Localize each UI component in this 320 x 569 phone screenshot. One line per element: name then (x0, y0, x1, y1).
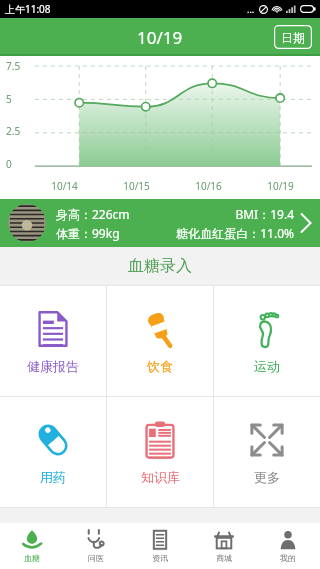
button[interactable]: 更多 (214, 397, 320, 507)
staticText: 身高：226cm (56, 206, 175, 222)
button[interactable]: 问医 (64, 523, 128, 569)
staticText: 健康报告 (27, 358, 79, 374)
staticText: 知识库 (141, 469, 180, 485)
button[interactable]: 身高：226cm (0, 199, 320, 247)
staticText: 日期 (281, 30, 305, 45)
staticText: 上午11:08 (5, 2, 51, 16)
staticText: 我的 (280, 553, 296, 563)
staticText: 10/15 (123, 179, 150, 193)
staticText: 10/19 (267, 179, 294, 193)
staticText: 7.5 (6, 59, 21, 73)
staticText: 商城 (216, 553, 232, 563)
staticText: 问医 (88, 553, 104, 563)
staticText: 血糖 (24, 553, 40, 563)
staticText: BMI：19.4 (175, 206, 294, 222)
staticText: 10/14 (51, 179, 78, 193)
staticText: 血糖录入 (128, 256, 192, 276)
staticText: 饮食 (147, 358, 173, 374)
staticText: ... (247, 3, 255, 15)
button[interactable]: 运动 (214, 286, 320, 396)
button[interactable]: 用药 (0, 397, 106, 507)
staticText: 10/19 (137, 26, 183, 49)
button[interactable]: 知识库 (107, 397, 213, 507)
staticText: 运动 (254, 358, 280, 374)
staticText: 用药 (40, 469, 66, 485)
staticText: 0 (6, 157, 12, 171)
button[interactable]: 血糖 (0, 523, 64, 569)
button[interactable]: 资讯 (128, 523, 192, 569)
other: Details (300, 212, 312, 234)
button[interactable]: 商城 (192, 523, 256, 569)
staticText: 体重：99kg (56, 225, 153, 241)
staticText: 更多 (254, 469, 280, 485)
button[interactable]: 健康报告 (0, 286, 106, 396)
staticText: 糖化血红蛋白：11.0% (153, 225, 294, 241)
button[interactable]: 我的 (256, 523, 320, 569)
staticText: 资讯 (152, 553, 168, 563)
staticText: 5 (6, 92, 12, 106)
staticText: 10/16 (195, 179, 222, 193)
staticText: 2.5 (6, 124, 21, 138)
button[interactable]: 饮食 (107, 286, 213, 396)
button[interactable]: 日期 (274, 25, 312, 49)
